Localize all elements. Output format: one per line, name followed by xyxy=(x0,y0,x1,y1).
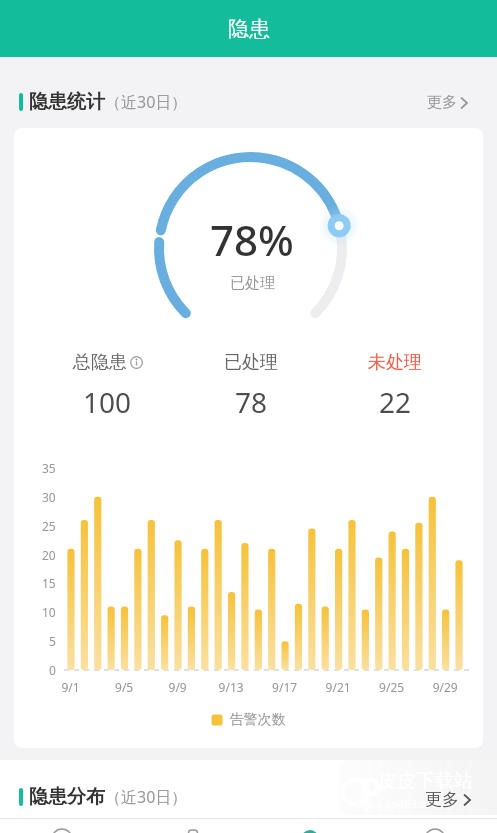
staticText: 未处理 xyxy=(368,351,422,374)
button[interactable]: 更多 xyxy=(427,93,469,112)
button[interactable]: 未处理 xyxy=(323,351,467,421)
button[interactable]: 隐患 xyxy=(0,0,497,57)
staticText: （近30日） xyxy=(105,786,188,808)
staticText: 隐患统计 xyxy=(29,90,105,114)
button[interactable]: 更多 xyxy=(425,789,472,810)
staticText: 100 xyxy=(83,383,132,421)
staticText: （近30日） xyxy=(105,91,188,113)
staticText: www.pp469.com xyxy=(356,796,443,811)
staticText: 皮皮下载站 xyxy=(378,769,473,793)
staticText: 隐患 xyxy=(228,16,270,42)
button[interactable]: 总隐患 xyxy=(36,351,179,421)
staticText: 更多 xyxy=(427,93,457,112)
staticText: 隐患分布 xyxy=(29,785,105,809)
staticText: 已处理 xyxy=(224,351,278,374)
staticText: 总隐患 xyxy=(73,351,127,374)
staticText: 78% xyxy=(210,211,294,268)
staticText: 22 xyxy=(379,383,412,421)
staticText: 78 xyxy=(235,383,268,421)
staticText: 已处理 xyxy=(230,274,275,293)
button[interactable]: 已处理 xyxy=(179,351,323,421)
staticText: 更多 xyxy=(425,789,459,810)
